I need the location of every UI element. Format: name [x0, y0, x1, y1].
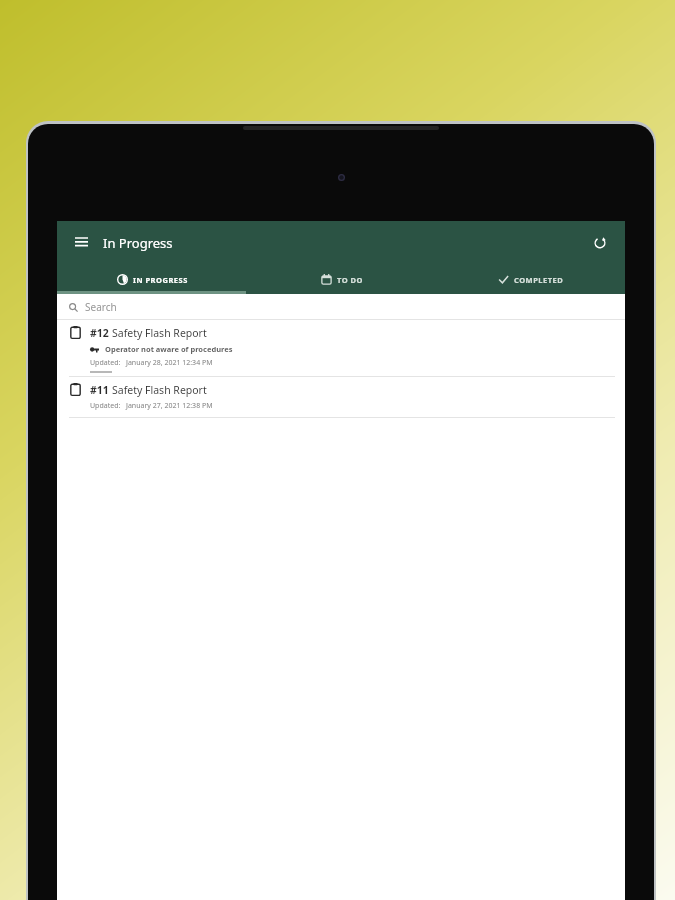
- staticText: #11: [90, 383, 112, 397]
- button[interactable]: Search: [69, 294, 625, 320]
- staticText: Safety Flash Report: [112, 326, 207, 340]
- staticText: TO DO: [337, 275, 363, 285]
- staticText: In Progress: [103, 234, 173, 252]
- button[interactable]: IN PROGRESS: [57, 264, 247, 294]
- staticText: January 28, 2021 12:34 PM: [126, 358, 213, 368]
- staticText: Search: [85, 300, 117, 314]
- button[interactable]: Open navigation menu: [69, 231, 93, 255]
- staticText: Safety Flash Report: [112, 383, 207, 397]
- staticText: Updated:: [90, 358, 121, 368]
- staticText: Operator not aware of procedures: [105, 344, 233, 354]
- button[interactable]: Refresh: [587, 230, 613, 256]
- button[interactable]: TO DO: [247, 264, 436, 294]
- staticText: IN PROGRESS: [133, 275, 188, 285]
- staticText: January 27, 2021 12:38 PM: [126, 401, 213, 411]
- staticText: Updated:: [90, 401, 121, 411]
- button[interactable]: #12: [57, 320, 625, 377]
- button[interactable]: COMPLETED: [436, 264, 625, 294]
- staticText: COMPLETED: [514, 275, 564, 285]
- staticText: #12: [90, 326, 112, 340]
- button[interactable]: #11: [57, 377, 625, 418]
